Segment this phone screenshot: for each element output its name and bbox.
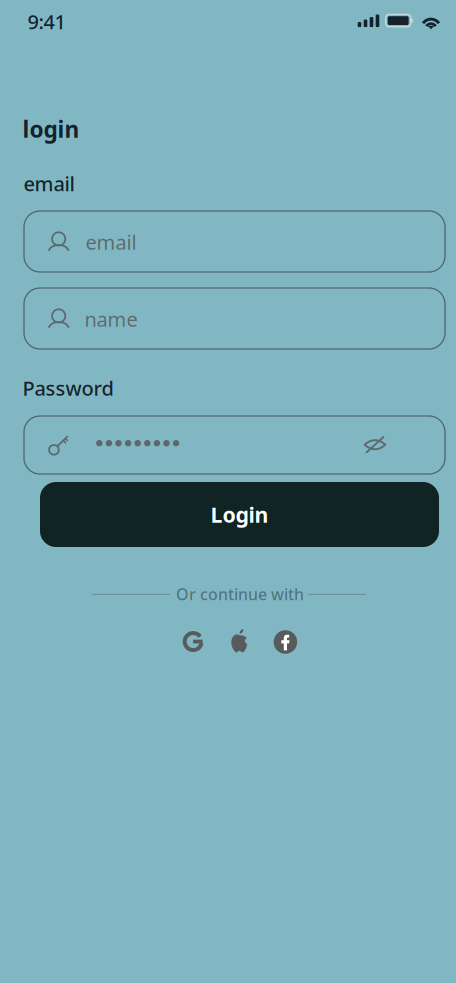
staticText: name [84, 306, 137, 332]
staticText: email [85, 229, 136, 255]
staticText: Password [22, 375, 113, 401]
button[interactable] [24, 416, 445, 474]
button[interactable]: Show password [353, 423, 397, 467]
button[interactable]: Continue with Facebook [274, 630, 297, 654]
button[interactable]: Login [40, 482, 439, 547]
staticText: Login [210, 500, 268, 529]
button[interactable]: email [24, 211, 445, 272]
button[interactable]: Continue with Apple [230, 628, 249, 653]
button[interactable]: Continue with Google [182, 630, 204, 653]
staticText: 9:41 [27, 8, 65, 35]
staticText: email [23, 170, 74, 197]
button[interactable]: name [24, 288, 445, 349]
staticText: Or continue with [176, 583, 304, 605]
staticText: login [22, 114, 79, 144]
